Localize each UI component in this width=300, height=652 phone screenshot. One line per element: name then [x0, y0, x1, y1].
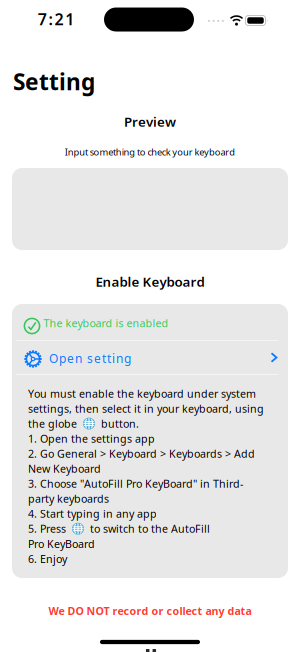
staticText: We DO NOT record or collect any data — [48, 604, 251, 618]
staticText: You must enable the keyboard under syste… — [28, 386, 256, 401]
staticText: 2. Go General > Keyboard > Keyboards > A… — [28, 447, 255, 461]
staticText: 4. Start typing in any app — [28, 507, 157, 521]
staticText: 6. Enjoy — [28, 552, 67, 566]
button[interactable]: Open setting — [12, 341, 288, 374]
staticText: The keyboard is enabled — [43, 316, 168, 330]
staticText: 5. Press — [28, 522, 69, 536]
staticText: Setting — [13, 66, 95, 96]
staticText: Pro KeyBoard — [28, 537, 95, 551]
staticText: button. — [98, 416, 139, 431]
staticText: the globe — [28, 416, 80, 431]
staticText: 1. Open the settings app — [28, 431, 155, 446]
staticText: to switch to the AutoFill — [87, 522, 210, 536]
staticText: Preview — [124, 113, 176, 130]
staticText: party keyboards — [28, 492, 109, 506]
staticText: 7:21 — [38, 8, 74, 30]
staticText: Enable Keyboard — [95, 273, 204, 290]
staticText: 3. Choose "AutoFill Pro KeyBoard" in Thi… — [28, 477, 243, 491]
staticText: settings, then select it in your keyboar… — [28, 401, 264, 416]
staticText: New Keyboard — [28, 462, 101, 476]
staticText: Open setting — [49, 350, 131, 366]
staticText: Input something to check your keyboard — [65, 146, 235, 158]
